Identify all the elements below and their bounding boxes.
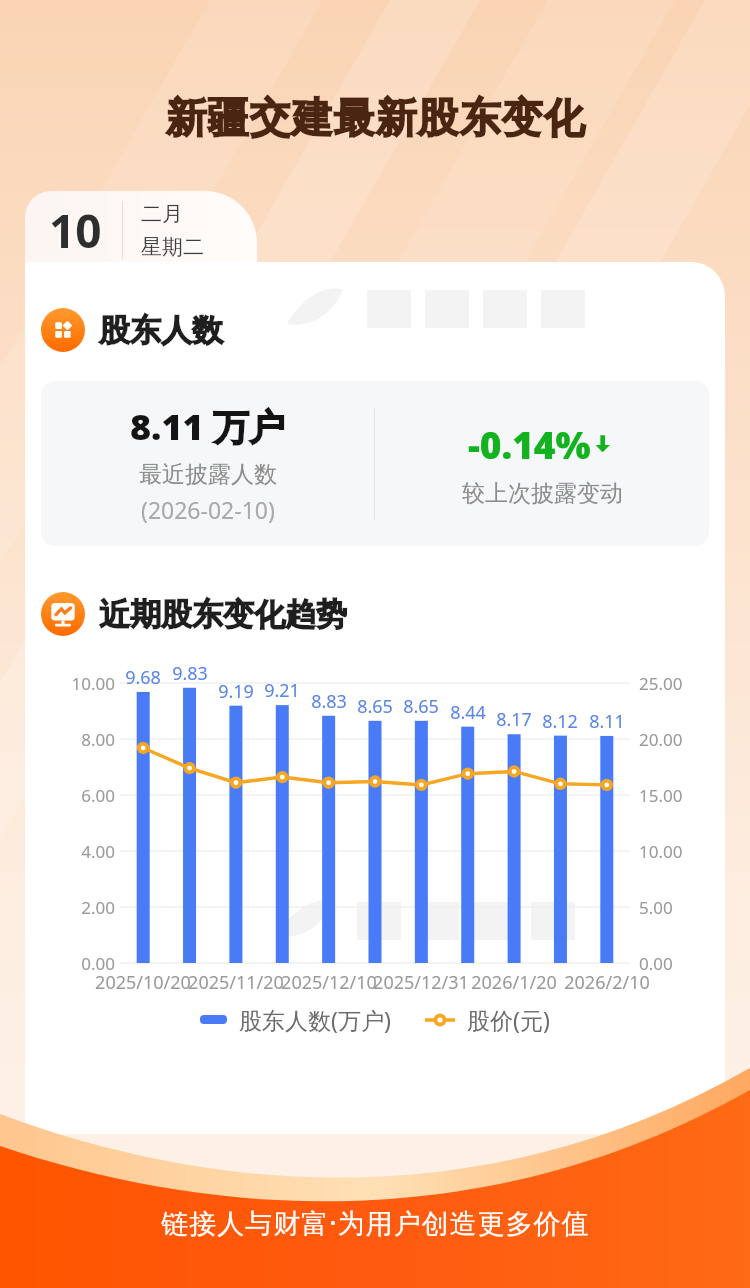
staticText: 8.17 bbox=[484, 707, 544, 732]
other: 近期股东变化趋势 bbox=[41, 592, 85, 636]
staticText: 25.00 bbox=[639, 672, 709, 695]
staticText: 5.00 bbox=[639, 896, 709, 919]
staticText: 2026/2/10 bbox=[552, 970, 662, 995]
staticText: 星期二 bbox=[141, 234, 204, 260]
staticText: 9.21 bbox=[252, 678, 312, 703]
staticText: 股东人数 bbox=[99, 311, 223, 350]
staticText: 8.83 bbox=[299, 689, 359, 714]
staticText: 2025/10/20 bbox=[88, 970, 198, 995]
staticText: (2026-02-10) bbox=[141, 494, 275, 525]
staticText: -0.14% bbox=[468, 419, 591, 469]
staticText: 15.00 bbox=[639, 784, 709, 807]
staticText: 20.00 bbox=[639, 728, 709, 751]
staticText: 2025/12/31 bbox=[366, 970, 476, 995]
staticText: 二月 bbox=[141, 201, 183, 227]
staticText: 最近披露人数 bbox=[139, 460, 277, 489]
staticText: 新疆交建最新股东变化 bbox=[165, 93, 585, 145]
staticText: 股东人数(万户) bbox=[239, 1004, 391, 1035]
staticText: 2025/11/20 bbox=[181, 970, 291, 995]
staticText: 8.11 bbox=[577, 709, 637, 734]
staticText: 8.65 bbox=[345, 694, 405, 719]
staticText: 10.00 bbox=[53, 672, 115, 695]
staticText: 8.12 bbox=[530, 709, 590, 734]
staticText: 链接人与财富·为用户创造更多价值 bbox=[161, 1204, 590, 1241]
staticText: 9.19 bbox=[206, 679, 266, 704]
staticText: 6.00 bbox=[53, 784, 115, 807]
staticText: 2.00 bbox=[53, 896, 115, 919]
other: 股东人数 bbox=[41, 308, 85, 352]
staticText: 近期股东变化趋势 bbox=[99, 595, 347, 634]
button[interactable]: 近期股东变化趋势 bbox=[41, 592, 725, 636]
staticText: 8.65 bbox=[391, 694, 451, 719]
staticText: 股价(元) bbox=[467, 1004, 550, 1035]
staticText: 8.44 bbox=[438, 700, 498, 725]
staticText: 2025/12/10 bbox=[274, 970, 384, 995]
staticText: 10 bbox=[49, 199, 102, 262]
button[interactable]: 股东人数 bbox=[41, 308, 725, 352]
staticText: 8.00 bbox=[53, 728, 115, 751]
staticText: 2026/1/20 bbox=[459, 970, 569, 995]
staticText: 9.83 bbox=[160, 661, 220, 686]
staticText: 10.00 bbox=[639, 840, 709, 863]
staticText: 9.68 bbox=[113, 665, 173, 690]
button[interactable]: 8.11 万户 bbox=[41, 381, 709, 546]
staticText: 0.00 bbox=[639, 952, 709, 975]
staticText: 8.11 万户 bbox=[130, 402, 286, 451]
staticText: 较上次披露变动 bbox=[462, 479, 623, 508]
button[interactable]: 10 bbox=[25, 191, 257, 269]
staticText: 0.00 bbox=[53, 952, 115, 975]
staticText: 4.00 bbox=[53, 840, 115, 863]
